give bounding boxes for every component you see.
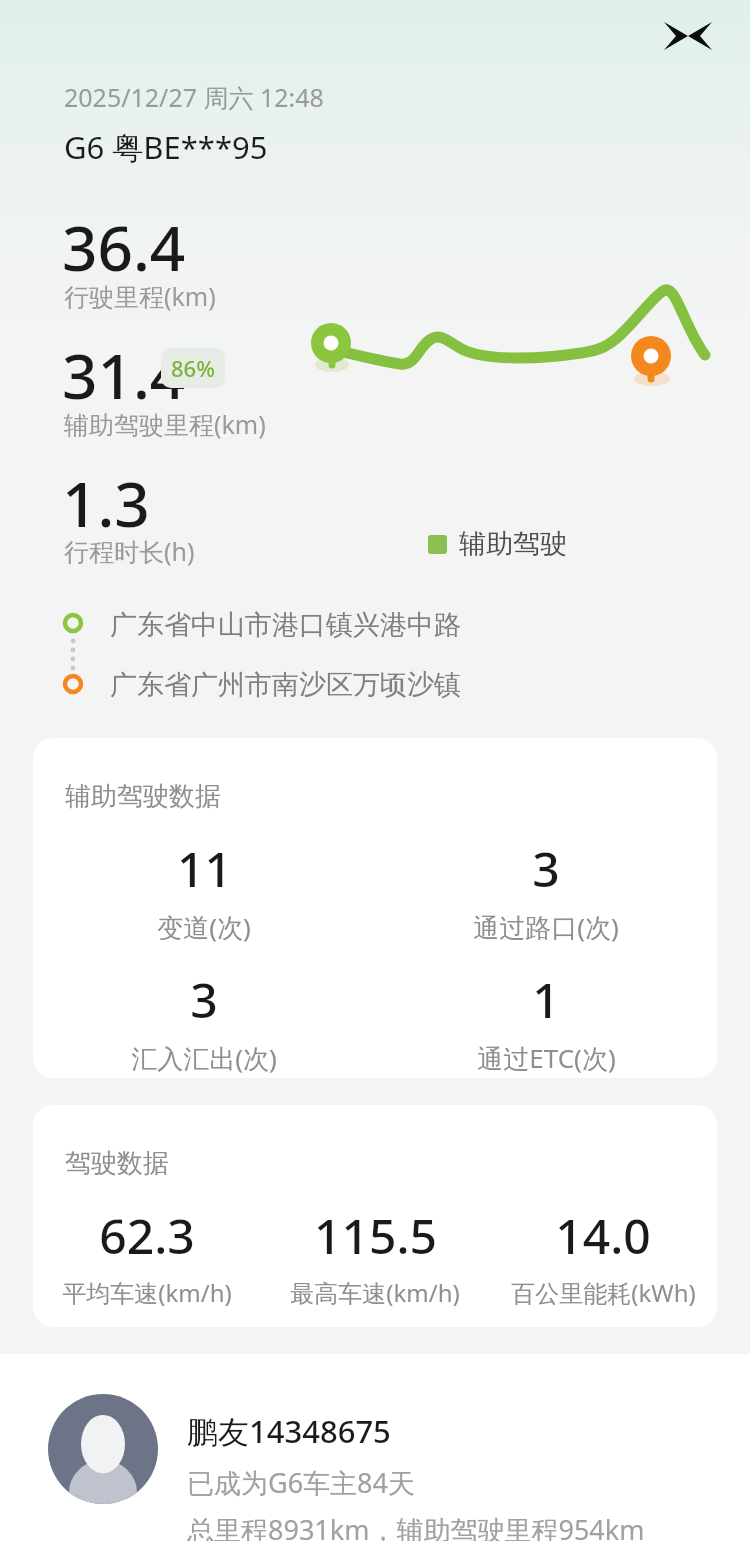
staticText: 广东省广州市南沙区万顷沙镇 <box>110 668 461 702</box>
staticText: 11 <box>177 836 232 901</box>
button[interactable]: XPeng logo <box>658 14 718 58</box>
staticText: 2025/12/27 周六 12:48 <box>64 80 324 114</box>
staticText: 辅助驾驶数据 <box>65 780 221 813</box>
staticText: 14.0 <box>555 1203 651 1268</box>
staticText: 平均车速(km/h) <box>62 1276 232 1309</box>
staticText: 已成为G6车主84天 <box>187 1464 415 1501</box>
staticText: 62.3 <box>99 1203 195 1268</box>
staticText: 115.5 <box>314 1203 437 1268</box>
button[interactable]: 62.3 <box>33 1203 261 1309</box>
button[interactable]: 辅助驾驶 <box>428 527 567 561</box>
button[interactable]: 1 <box>375 967 717 1076</box>
staticText: 辅助驾驶 <box>459 527 567 561</box>
staticText: 行程时长(h) <box>64 534 195 568</box>
staticText: 鹏友14348675 <box>187 1410 391 1452</box>
staticText: 1 <box>532 967 560 1032</box>
staticText: 3 <box>532 836 560 901</box>
staticText: 31.4 <box>62 333 186 417</box>
staticText: 辅助驾驶里程(km) <box>64 407 266 441</box>
button[interactable]: 3 <box>33 967 375 1076</box>
staticText: 行驶里程(km) <box>64 279 216 313</box>
button[interactable]: 115.5 <box>261 1203 489 1309</box>
staticText: 总里程8931km，辅助驾驶里程954km <box>187 1511 645 1541</box>
staticText: 汇入汇出(次) <box>131 1040 277 1076</box>
button[interactable]: 11 <box>33 836 375 945</box>
staticText: 1.3 <box>62 461 150 545</box>
button[interactable]: 驾驶数据 <box>33 1105 717 1327</box>
staticText: 变道(次) <box>157 909 251 945</box>
staticText: 通过ETC(次) <box>477 1040 616 1076</box>
staticText: 86% <box>171 353 215 383</box>
staticText: G6 粤BE***95 <box>64 126 268 168</box>
button[interactable]: 鹏友14348675 <box>0 1354 750 1541</box>
button[interactable]: 辅助驾驶数据 <box>33 738 717 1078</box>
staticText: 最高车速(km/h) <box>290 1276 460 1309</box>
button[interactable]: 14.0 <box>489 1203 717 1309</box>
staticText: 广东省中山市港口镇兴港中路 <box>110 608 461 642</box>
staticText: 通过路口(次) <box>473 909 619 945</box>
staticText: 百公里能耗(kWh) <box>511 1276 696 1309</box>
button[interactable]: 3 <box>375 836 717 945</box>
staticText: 3 <box>190 967 218 1032</box>
staticText: 36.4 <box>62 205 186 289</box>
staticText: 驾驶数据 <box>65 1147 169 1180</box>
